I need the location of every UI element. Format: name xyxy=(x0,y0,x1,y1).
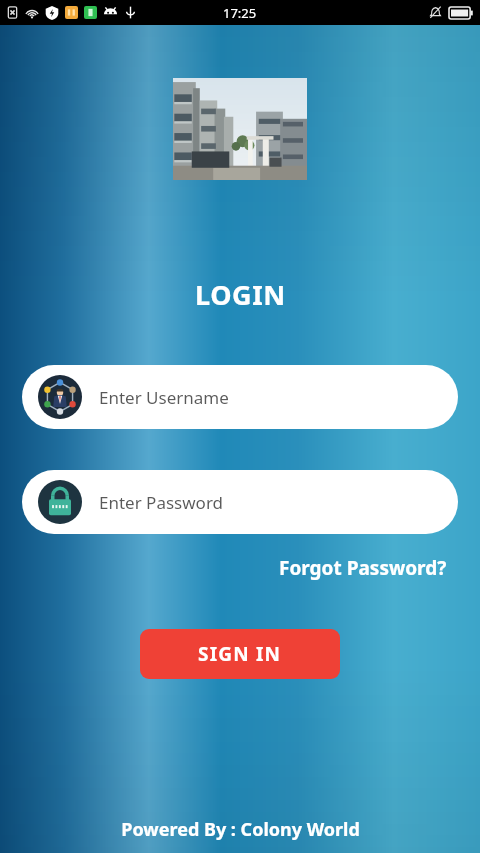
staticText: LOGIN xyxy=(195,276,286,313)
staticText: Enter Password xyxy=(99,491,224,514)
staticText: Forgot Password? xyxy=(279,555,447,581)
staticText: Powered By : Colony World xyxy=(121,817,360,842)
other: Password xyxy=(38,480,82,524)
button[interactable]: SIGN IN xyxy=(140,629,340,679)
staticText: 17:25 xyxy=(223,4,257,22)
staticText: SIGN IN xyxy=(198,641,282,667)
button[interactable]: Username xyxy=(22,365,458,429)
other: Username xyxy=(38,375,82,419)
button[interactable]: Forgot Password? xyxy=(277,552,449,584)
staticText: Enter Username xyxy=(99,386,229,409)
button[interactable]: Password xyxy=(22,470,458,534)
